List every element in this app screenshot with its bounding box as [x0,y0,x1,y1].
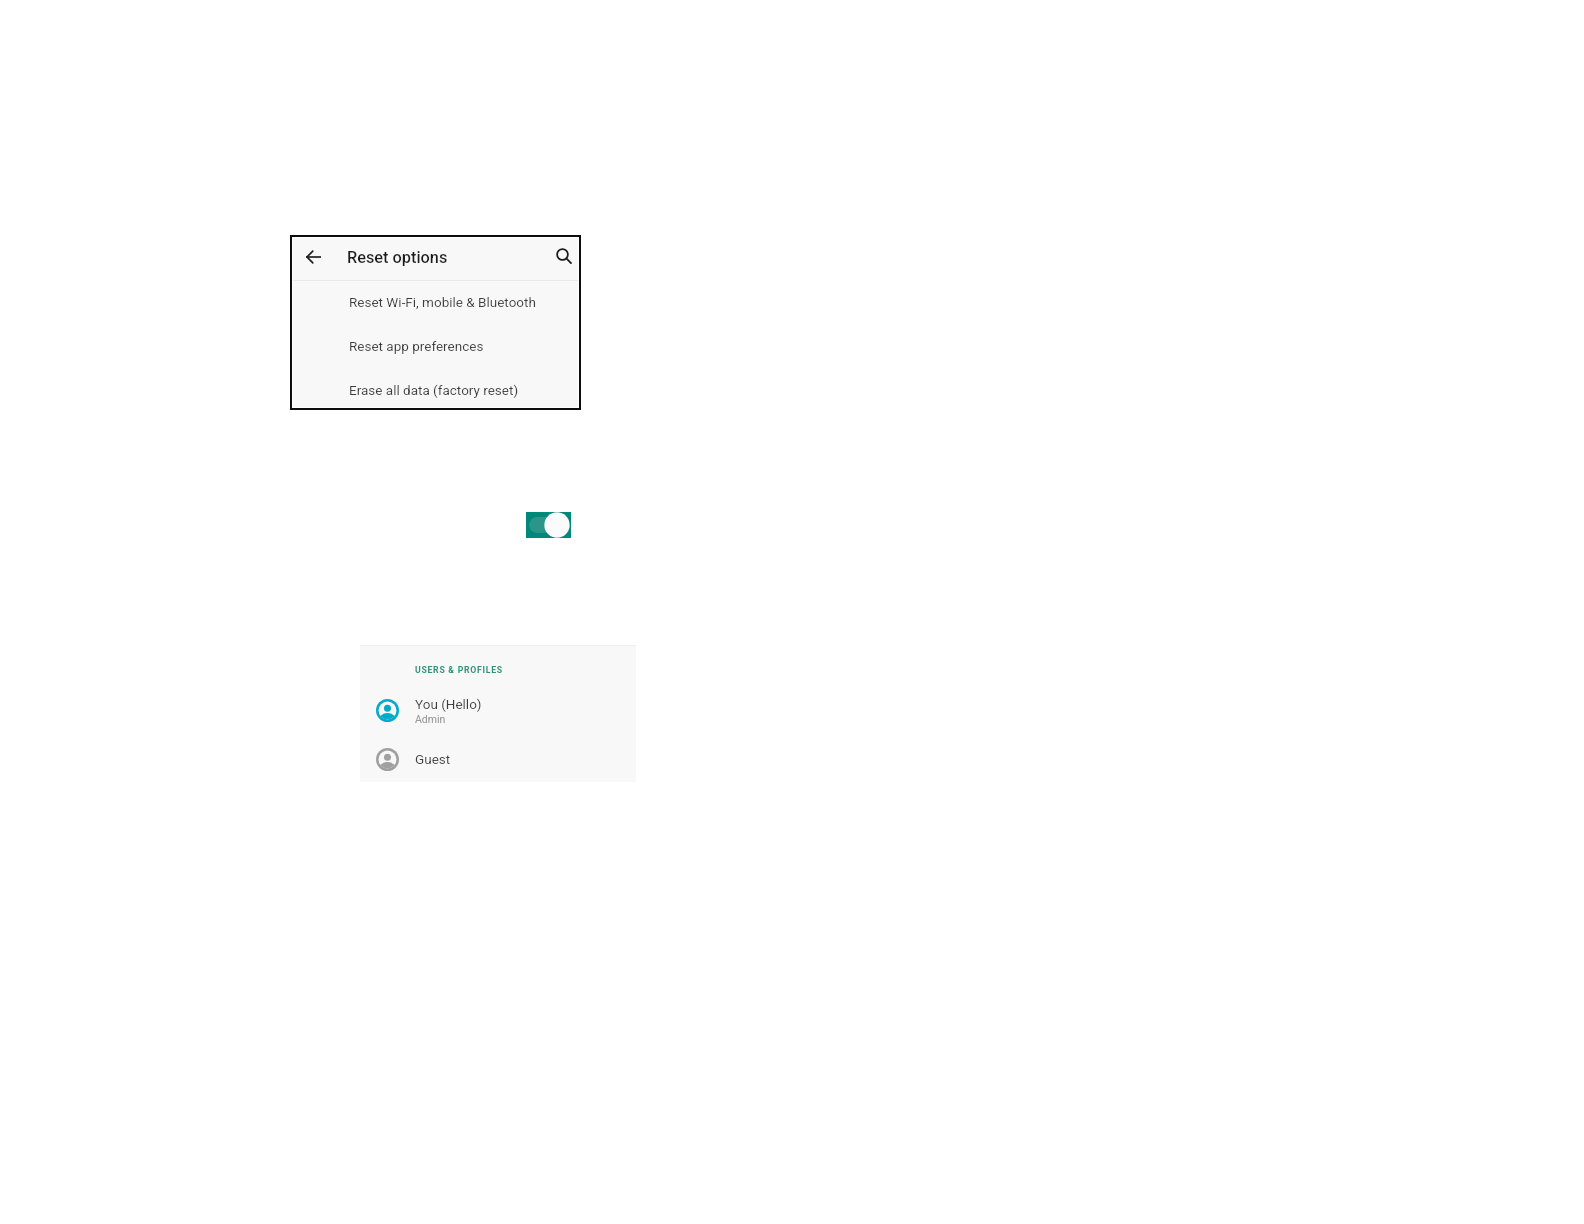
button[interactable]: Erase all data (factory reset) [293,368,578,412]
button[interactable]: Guest [360,739,636,779]
button[interactable]: Search [548,246,582,268]
button[interactable]: You (Hello) [360,690,636,730]
button[interactable]: Switch on [526,512,571,538]
staticText: USERS & PROFILES [415,665,503,675]
button[interactable]: Back [296,248,331,266]
button[interactable]: Reset Wi-Fi, mobile & Bluetooth [293,280,578,324]
staticText: Reset options [347,248,448,267]
button[interactable]: Reset app preferences [293,324,578,368]
staticText: Reset Wi-Fi, mobile & Bluetooth [349,294,536,310]
staticText: You (Hello) [415,696,482,712]
staticText: Guest [415,751,451,767]
staticText: Erase all data (factory reset) [349,382,519,398]
staticText: Admin [415,713,446,725]
staticText: Reset app preferences [349,338,484,354]
